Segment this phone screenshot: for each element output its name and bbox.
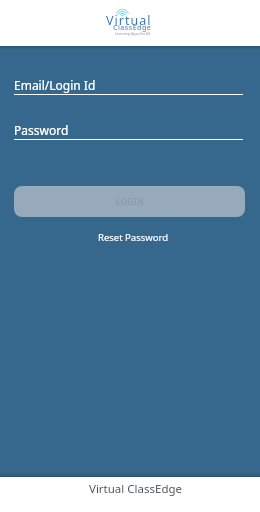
staticText: ClassEdge xyxy=(113,23,152,33)
staticText: Email/Login Id xyxy=(14,77,96,93)
staticText: Virtual xyxy=(106,12,152,29)
staticText: Reset Password xyxy=(98,231,169,244)
button[interactable]: LOGIN xyxy=(14,186,245,217)
button[interactable]: Reset Password xyxy=(98,231,169,244)
button[interactable]: Email/Login Id text field xyxy=(14,70,243,95)
staticText: Learning Apps for All xyxy=(115,31,151,36)
other: Virtual ClassEdge logo xyxy=(116,9,129,17)
button[interactable]: Password text field xyxy=(14,115,243,140)
staticText: Virtual ClassEdge xyxy=(89,481,183,497)
staticText: LOGIN xyxy=(116,196,144,207)
staticText: Password xyxy=(14,122,69,138)
